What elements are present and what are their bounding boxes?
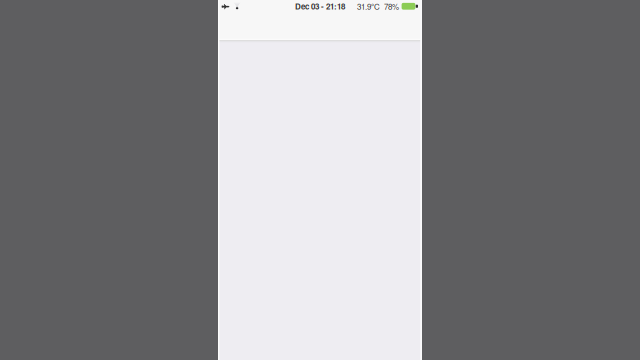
staticText: 31.9°C bbox=[357, 0, 380, 12]
staticText: 78% bbox=[384, 0, 399, 12]
staticText: Dec 03 - 21:18 bbox=[295, 0, 345, 12]
